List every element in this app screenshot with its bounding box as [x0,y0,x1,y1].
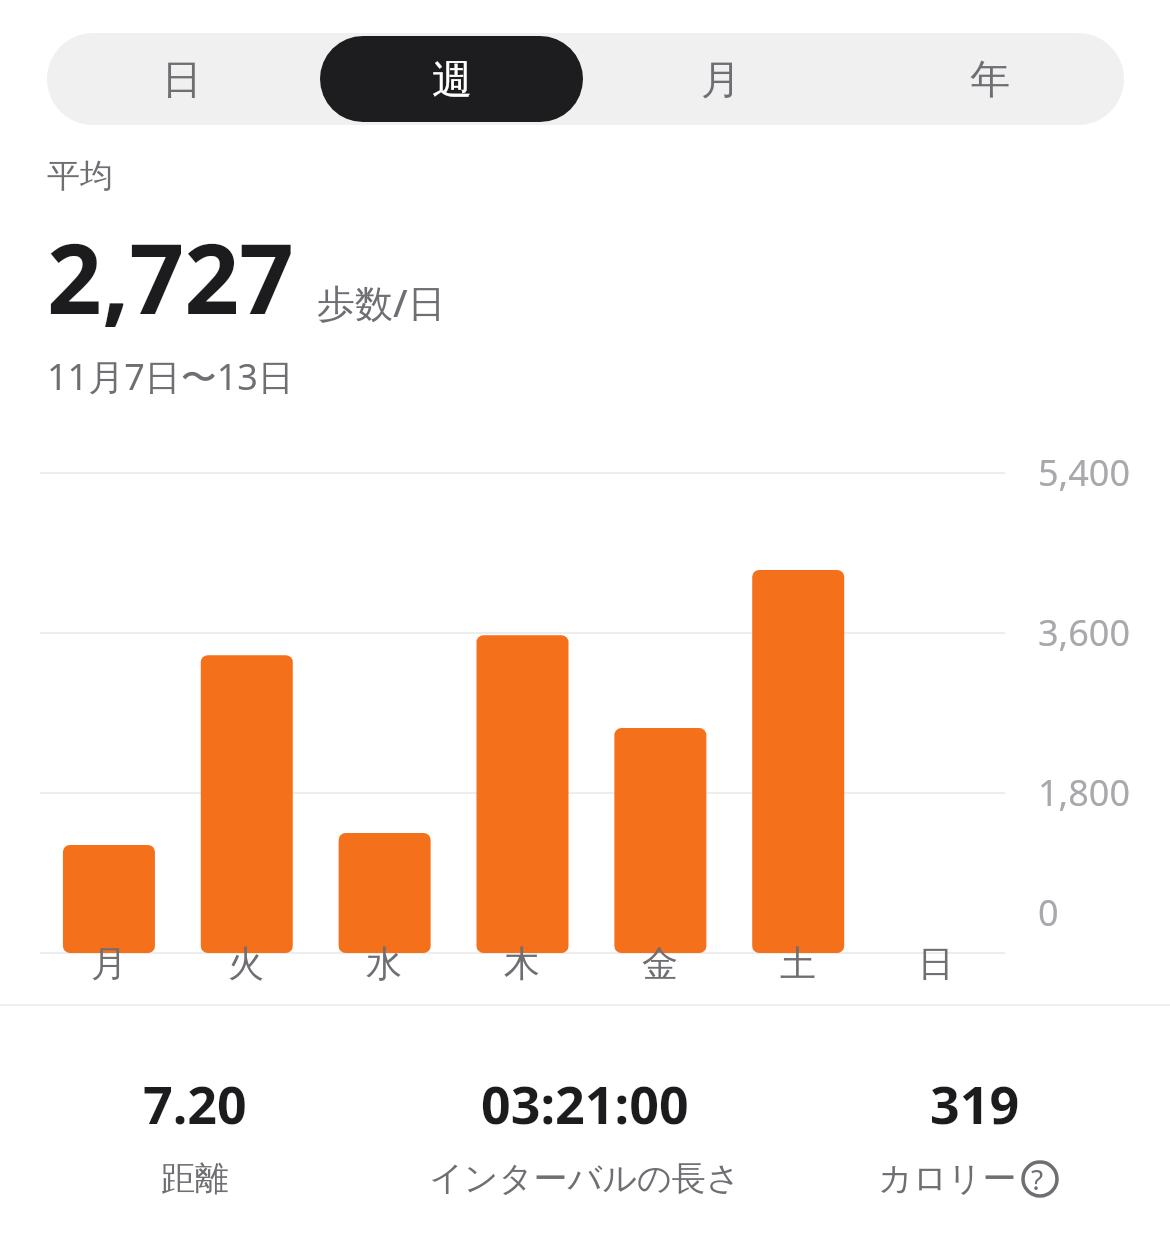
staticText: 3,600 [1038,608,1131,657]
staticText: カロリー [878,1157,1017,1200]
staticText: 7.20 [143,1068,247,1139]
staticText: 金 [642,941,678,986]
staticText: 日 [918,941,954,986]
staticText: 0 [1038,888,1059,937]
staticText: 距離 [161,1157,229,1200]
staticText: 1,800 [1038,768,1131,817]
button[interactable]: 7.20 [143,1068,247,1228]
staticText: 日 [162,54,202,104]
staticText: 5,400 [1038,448,1131,497]
staticText: 水 [366,941,402,986]
staticText: 2,727 [47,211,295,342]
staticText: インターバルの長さ [429,1157,741,1200]
other: カロリーについて [1021,1160,1059,1198]
button[interactable]: 年 [858,36,1121,122]
staticText: 歩数/日 [317,276,446,328]
button[interactable]: 月 [589,36,852,122]
staticText: 土 [780,941,816,986]
staticText: 週 [432,54,472,104]
button[interactable]: 週 [320,36,583,122]
staticText: 木 [504,941,540,986]
staticText: ? [1031,1160,1044,1198]
staticText: 月 [701,54,741,104]
staticText: 年 [970,54,1010,104]
button[interactable]: 319 [878,1068,1072,1228]
staticText: 火 [228,941,264,986]
staticText: 03:21:00 [481,1068,689,1139]
button[interactable]: 日 [50,36,314,122]
staticText: 11月7日〜13日 [47,352,294,401]
button[interactable]: 03:21:00 [429,1068,741,1228]
staticText: 月 [91,941,127,986]
staticText: 平均 [47,155,113,197]
staticText: 319 [930,1068,1020,1139]
